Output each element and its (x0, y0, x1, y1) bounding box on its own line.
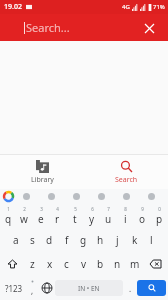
staticText: s (30, 233, 35, 247)
staticText: IN • EN (78, 284, 100, 293)
staticText: 9 (141, 206, 144, 212)
button[interactable]: k (126, 228, 143, 252)
button[interactable]: f (58, 228, 75, 252)
button[interactable]: m (126, 252, 143, 276)
staticText: 8 (124, 206, 127, 212)
staticText: 7 (107, 206, 110, 212)
button[interactable]: d (41, 228, 58, 252)
button[interactable]: Themes (13, 189, 39, 204)
staticText: w (20, 212, 28, 226)
staticText: k (132, 233, 138, 247)
staticText: y (89, 212, 95, 226)
button[interactable]: GIF (39, 189, 64, 204)
button[interactable]: c (58, 252, 75, 276)
staticText: q (5, 212, 12, 226)
button[interactable]: b (92, 252, 109, 276)
staticText: h (97, 233, 104, 247)
button[interactable]: 3 (32, 204, 49, 228)
button[interactable]: 8 (117, 204, 134, 228)
staticText: 71% (153, 3, 165, 11)
staticText: r (55, 212, 60, 226)
staticText: Search... (26, 20, 70, 35)
button[interactable]: 7 (100, 204, 117, 228)
button[interactable]: h (92, 228, 109, 252)
button[interactable]: Period (123, 276, 137, 300)
button[interactable]: Backspace (143, 252, 168, 276)
staticText: n (114, 257, 121, 271)
button[interactable]: n (109, 252, 126, 276)
button[interactable]: l (143, 228, 160, 252)
button[interactable]: g (75, 228, 92, 252)
staticText: . (129, 283, 132, 294)
button[interactable]: Google (4, 192, 13, 201)
button[interactable]: j (109, 228, 126, 252)
button[interactable]: Search (137, 280, 166, 296)
staticText: g (80, 233, 87, 247)
button[interactable]: 9 (134, 204, 151, 228)
button[interactable]: s (24, 228, 41, 252)
button[interactable]: Change language (39, 276, 55, 300)
staticText: o (139, 212, 146, 226)
staticText: 4 (56, 206, 59, 212)
staticText: m (130, 257, 140, 271)
staticText: t (73, 212, 77, 226)
staticText: 3 (40, 206, 43, 212)
staticText: Library (31, 175, 54, 185)
button[interactable]: 1 (0, 204, 16, 228)
button[interactable]: 4 (49, 204, 66, 228)
staticText: p (156, 212, 163, 226)
staticText: 0 (158, 206, 161, 212)
staticText: d (46, 233, 53, 247)
staticText: Search (115, 175, 138, 185)
button[interactable]: Search (84, 155, 168, 189)
button[interactable]: IN • EN (55, 280, 123, 296)
button[interactable]: 2 (16, 204, 32, 228)
staticText: i (124, 212, 127, 226)
staticText: 19.02 (4, 2, 22, 12)
staticText: c (64, 257, 69, 271)
staticText: l (150, 233, 153, 247)
button[interactable]: 0 (151, 204, 168, 228)
staticText: z (30, 257, 35, 271)
button[interactable]: 5 (66, 204, 83, 228)
staticText: 6 (91, 206, 94, 212)
button[interactable]: Clear search (138, 17, 160, 39)
staticText: ?123 (5, 283, 23, 294)
staticText: e (38, 212, 44, 226)
staticText: j (116, 233, 119, 247)
staticText: 5 (74, 206, 77, 212)
button[interactable]: a (7, 228, 24, 252)
button[interactable]: v (75, 252, 92, 276)
staticText: 2 (23, 206, 26, 212)
button[interactable]: Settings (64, 189, 89, 204)
button[interactable]: More (139, 189, 164, 204)
staticText: 4G (122, 3, 130, 11)
staticText: 1 (7, 206, 10, 212)
button[interactable]: Comma (25, 276, 39, 300)
staticText: v (81, 257, 87, 271)
button[interactable]: x (41, 252, 58, 276)
button[interactable]: ?123 (2, 276, 25, 300)
staticText: f (65, 233, 69, 247)
button[interactable]: Clipboard (89, 189, 114, 204)
staticText: u (105, 212, 112, 226)
staticText: b (97, 257, 104, 271)
button[interactable]: Sticker (114, 189, 139, 204)
staticText: , (31, 285, 34, 296)
button[interactable]: 6 (83, 204, 100, 228)
button[interactable]: Shift (0, 252, 24, 276)
button[interactable]: z (24, 252, 41, 276)
staticText: a (13, 233, 19, 247)
button[interactable]: Library (0, 155, 84, 189)
staticText: x (47, 257, 53, 271)
